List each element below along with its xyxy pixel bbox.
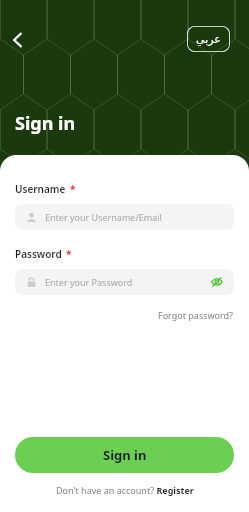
- staticText: عربي: [196, 33, 221, 46]
- staticText: *: [66, 247, 72, 261]
- button[interactable]: Don't have an account? Register: [56, 484, 194, 496]
- staticText: Enter your Username/Email: [45, 211, 162, 223]
- staticText: Username: [15, 182, 66, 196]
- button[interactable]: Forgot password?: [158, 309, 234, 321]
- staticText: Password: [15, 247, 62, 261]
- staticText: *: [70, 182, 76, 196]
- button[interactable]: Back: [4, 26, 32, 54]
- button[interactable]: Show password: [209, 274, 225, 290]
- button[interactable]: Enter your Password: [15, 269, 234, 295]
- staticText: Sign in: [15, 111, 76, 136]
- button[interactable]: عربي: [187, 26, 230, 52]
- button[interactable]: Enter your Username/Email: [15, 204, 234, 230]
- staticText: Enter your Password: [45, 276, 133, 288]
- button[interactable]: Sign in: [15, 437, 234, 473]
- staticText: Forgot password?: [158, 309, 234, 321]
- staticText: Don't have an account? Register: [56, 484, 194, 496]
- staticText: Sign in: [103, 446, 147, 464]
